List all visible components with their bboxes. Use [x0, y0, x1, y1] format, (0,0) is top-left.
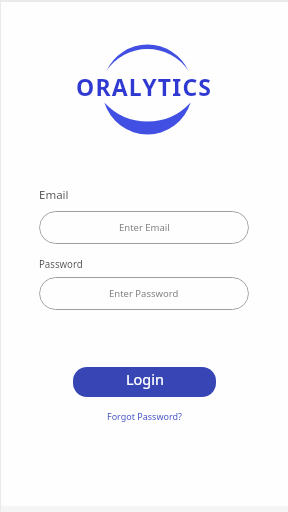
button[interactable]: Login — [73, 367, 216, 397]
button[interactable]: Enter Email — [39, 211, 249, 244]
staticText: Login — [126, 369, 164, 389]
staticText: ORALYTICS — [76, 71, 213, 97]
staticText: Enter Email — [119, 221, 170, 234]
button[interactable]: Forgot Password? — [107, 410, 182, 422]
staticText: Password — [39, 256, 83, 272]
button[interactable]: Enter Password — [39, 277, 249, 310]
staticText: Enter Password — [109, 287, 179, 300]
staticText: Email — [39, 187, 69, 203]
staticText: Forgot Password? — [107, 410, 182, 422]
